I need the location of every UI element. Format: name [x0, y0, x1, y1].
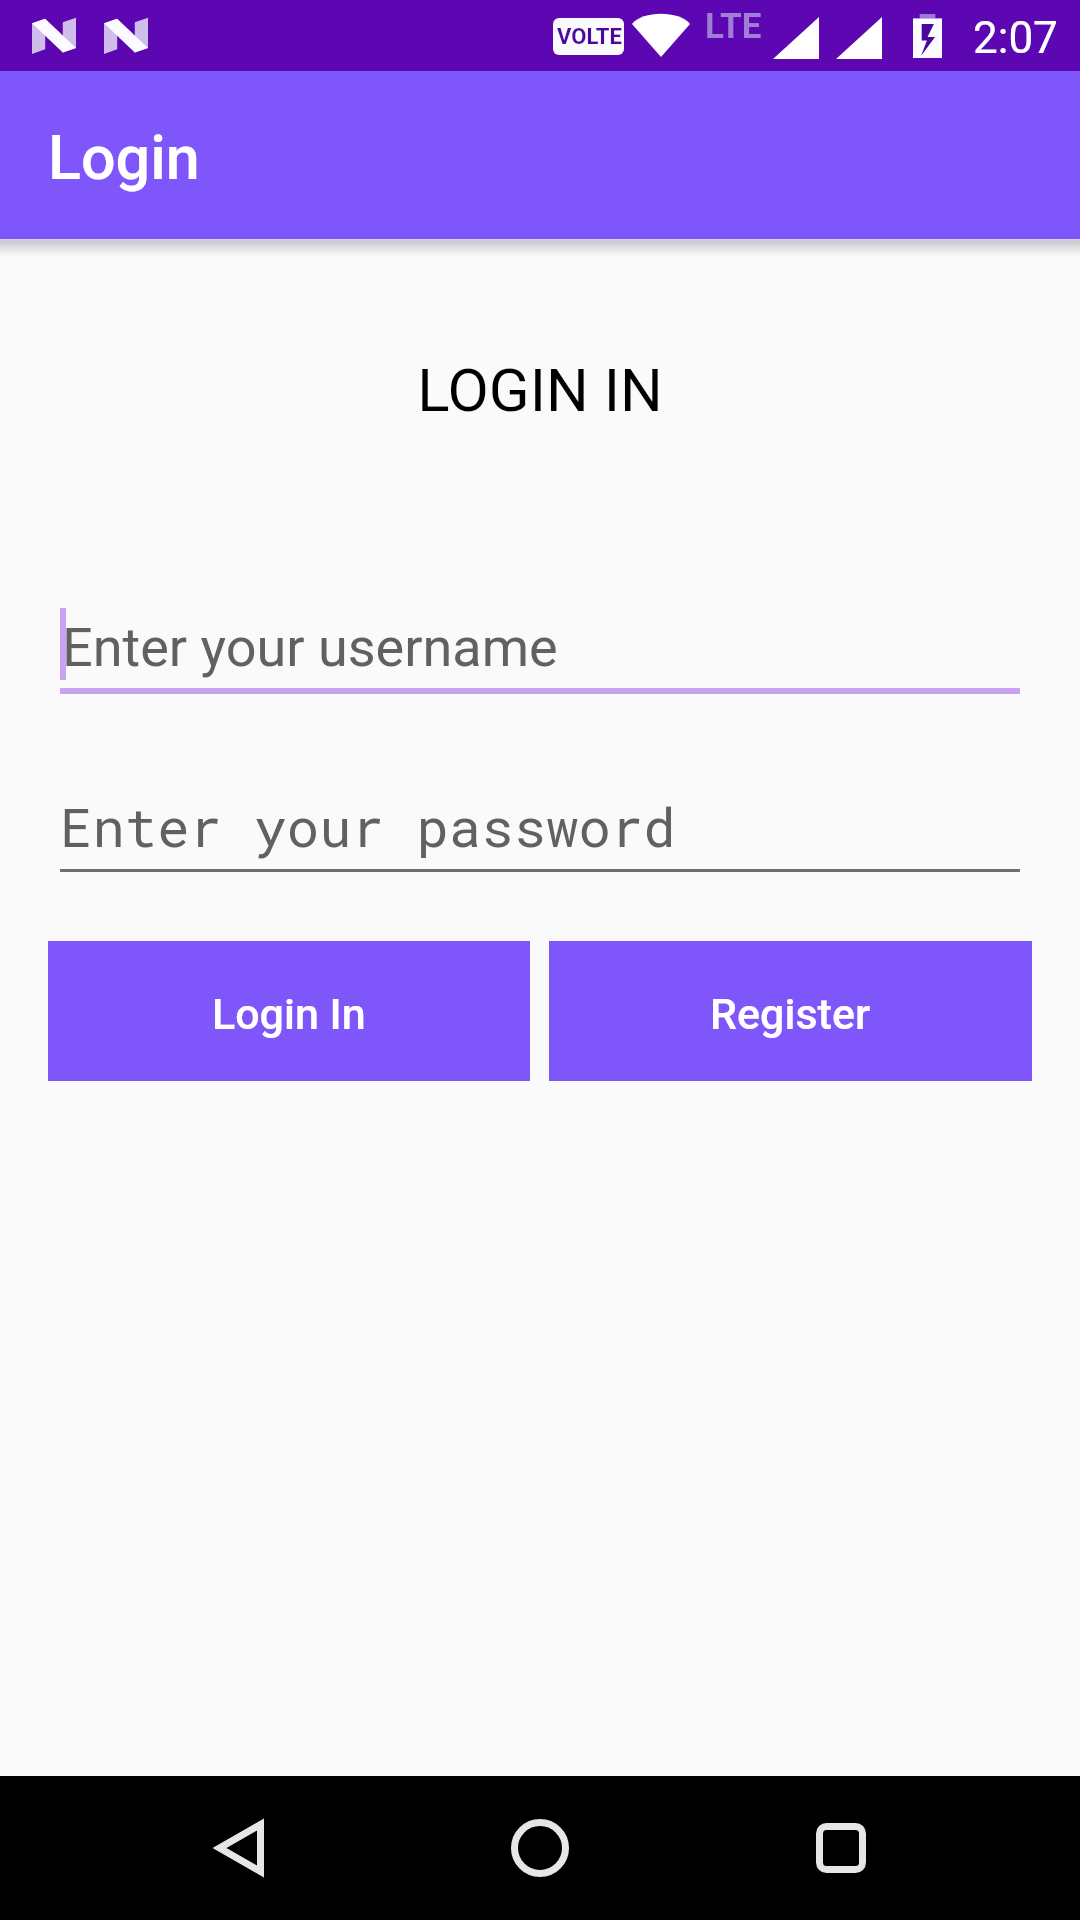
- staticText: LTE: [705, 6, 762, 47]
- button[interactable]: Recents: [769, 1776, 913, 1920]
- staticText: Enter your password: [60, 790, 676, 861]
- button[interactable]: Home: [468, 1776, 612, 1920]
- button[interactable]: Login In: [48, 941, 530, 1081]
- staticText: Login: [48, 122, 200, 193]
- button[interactable]: Enter your username: [60, 590, 1020, 694]
- button[interactable]: Register: [549, 941, 1032, 1081]
- staticText: LOGIN IN: [0, 355, 1080, 425]
- button[interactable]: Back: [168, 1776, 312, 1920]
- staticText: Enter your username: [62, 616, 558, 679]
- staticText: Register: [710, 989, 871, 1039]
- button[interactable]: Enter your password: [60, 770, 1020, 872]
- staticText: VOLTE: [557, 24, 622, 50]
- staticText: 2:07: [973, 12, 1058, 64]
- staticText: Login In: [212, 989, 366, 1039]
